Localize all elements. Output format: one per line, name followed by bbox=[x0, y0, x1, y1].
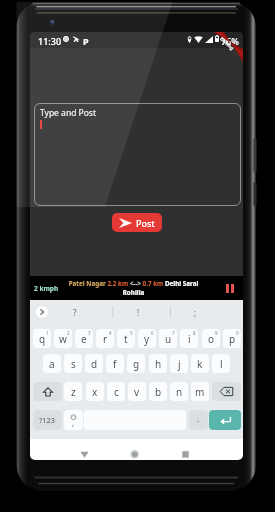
button[interactable]: k bbox=[191, 354, 209, 373]
staticText: ?123 bbox=[39, 415, 56, 425]
staticText: q bbox=[39, 332, 46, 346]
staticText: z bbox=[71, 385, 76, 399]
staticText: c bbox=[114, 385, 119, 399]
staticText: f bbox=[113, 357, 117, 371]
button[interactable]: Shift bbox=[33, 382, 62, 401]
button[interactable]: f bbox=[106, 354, 124, 373]
button[interactable]: Enter bbox=[209, 410, 241, 430]
staticText: n bbox=[176, 385, 183, 399]
staticText: P bbox=[83, 35, 89, 47]
staticText: l bbox=[220, 357, 223, 371]
button[interactable]: a bbox=[43, 354, 61, 373]
button[interactable]: w bbox=[54, 329, 72, 348]
button[interactable]: Emoji and comma bbox=[64, 410, 83, 430]
button[interactable]: q bbox=[33, 329, 51, 348]
staticText: r bbox=[103, 332, 108, 346]
staticText: 7 bbox=[172, 330, 175, 336]
button[interactable]: x bbox=[86, 382, 104, 401]
staticText: 2 bbox=[67, 330, 70, 336]
staticText: a bbox=[49, 357, 55, 371]
button[interactable]: o bbox=[202, 329, 220, 348]
staticText: . bbox=[197, 412, 200, 424]
staticText: i bbox=[188, 332, 191, 346]
staticText: y bbox=[144, 332, 150, 346]
button[interactable]: h bbox=[149, 354, 167, 373]
staticText: d bbox=[91, 357, 98, 371]
staticText: e bbox=[81, 332, 87, 346]
button[interactable]: More suggestions bbox=[36, 306, 48, 318]
staticText: o bbox=[208, 332, 215, 346]
staticText: Driving bbox=[219, 35, 236, 51]
staticText: v bbox=[134, 385, 140, 399]
button[interactable]: d bbox=[85, 354, 103, 373]
staticText: x bbox=[92, 385, 98, 399]
staticText: 76% bbox=[221, 35, 239, 47]
staticText: 0 bbox=[236, 330, 239, 336]
button[interactable]: Post bbox=[112, 213, 162, 232]
button[interactable]: e bbox=[75, 329, 93, 348]
staticText: ! bbox=[137, 307, 140, 318]
button[interactable]: j bbox=[170, 354, 188, 373]
staticText: m bbox=[195, 385, 205, 399]
staticText: 3 bbox=[88, 330, 91, 336]
button[interactable]: p bbox=[223, 329, 241, 348]
staticText: 6 bbox=[151, 330, 154, 336]
button[interactable]: i bbox=[180, 329, 198, 348]
staticText: Type and Post bbox=[40, 107, 97, 119]
button[interactable]: Backspace bbox=[212, 382, 241, 401]
button[interactable]: Back bbox=[74, 439, 243, 460]
button[interactable]: z bbox=[64, 382, 82, 401]
button[interactable]: . bbox=[189, 410, 208, 430]
button[interactable]: b bbox=[149, 382, 167, 401]
button[interactable]: r bbox=[96, 329, 114, 348]
staticText: h bbox=[155, 357, 162, 371]
staticText: k bbox=[197, 357, 203, 371]
button[interactable]: g bbox=[127, 354, 145, 373]
button[interactable]: l bbox=[212, 354, 230, 373]
button[interactable]: m bbox=[191, 382, 209, 401]
button[interactable]: u bbox=[159, 329, 177, 348]
staticText: u bbox=[165, 332, 172, 346]
staticText: Post bbox=[136, 217, 155, 229]
staticText: 8 bbox=[193, 330, 196, 336]
staticText: g bbox=[133, 357, 140, 371]
staticText: , bbox=[72, 417, 75, 428]
staticText: s bbox=[71, 357, 76, 371]
staticText: j bbox=[178, 357, 181, 371]
button[interactable]: y bbox=[138, 329, 156, 348]
button[interactable]: s bbox=[64, 354, 82, 373]
button[interactable]: ?123 bbox=[33, 410, 62, 430]
button[interactable]: n bbox=[170, 382, 188, 401]
button[interactable]: v bbox=[128, 382, 146, 401]
button[interactable]: c bbox=[107, 382, 125, 401]
button[interactable]: Pause navigation bbox=[226, 284, 234, 293]
staticText: p bbox=[229, 332, 236, 346]
staticText: 4 bbox=[109, 330, 112, 336]
staticText: t bbox=[124, 332, 128, 346]
staticText: ? bbox=[73, 307, 77, 318]
staticText: 11:30 bbox=[38, 35, 62, 47]
staticText: 5 bbox=[130, 330, 133, 336]
staticText: 9 bbox=[215, 330, 218, 336]
button[interactable]: t bbox=[117, 329, 135, 348]
staticText: b bbox=[155, 385, 162, 399]
staticText: w bbox=[59, 332, 67, 346]
staticText: 1 bbox=[46, 330, 49, 336]
staticText: Patel Nagar 2.2 km <--> 0.7 km Delhi Sar… bbox=[67, 279, 200, 297]
staticText: 2 kmph bbox=[34, 284, 59, 293]
staticText: ; bbox=[194, 307, 197, 318]
